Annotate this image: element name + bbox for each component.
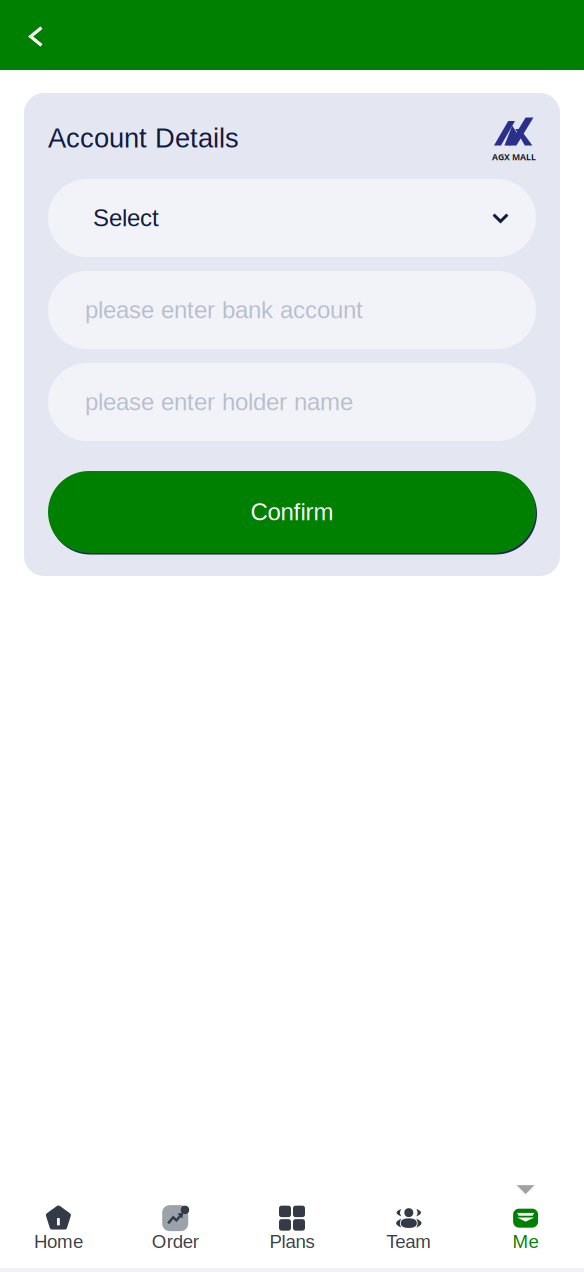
staticText: Home xyxy=(34,1231,83,1252)
staticText: Confirm xyxy=(250,499,333,525)
button[interactable]: please enter holder name xyxy=(48,363,536,441)
button[interactable]: Order xyxy=(117,1205,234,1252)
button[interactable]: Team xyxy=(350,1205,467,1252)
button[interactable]: Select xyxy=(48,179,536,257)
staticText: Account Details xyxy=(48,123,239,153)
button[interactable]: please enter bank account xyxy=(48,271,536,349)
button[interactable]: Me xyxy=(467,1205,584,1252)
button[interactable]: Back xyxy=(0,0,61,70)
staticText: Team xyxy=(386,1231,431,1252)
staticText: Plans xyxy=(269,1231,314,1252)
button[interactable]: Confirm xyxy=(48,471,536,553)
staticText: Me xyxy=(513,1231,539,1252)
staticText: please enter bank account xyxy=(85,297,363,323)
button[interactable]: Home xyxy=(0,1205,117,1252)
button[interactable]: Plans xyxy=(234,1205,350,1252)
staticText: Select xyxy=(93,205,159,231)
staticText: please enter holder name xyxy=(85,389,353,415)
staticText: Order xyxy=(152,1231,199,1252)
staticText: AGX MALL xyxy=(492,151,536,163)
